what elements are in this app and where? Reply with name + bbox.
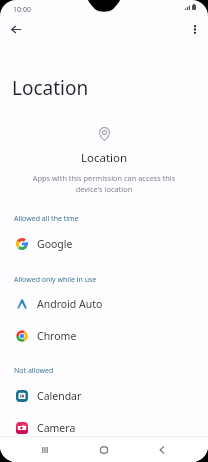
button[interactable]: Android Auto [0, 289, 208, 319]
staticText: Google [37, 237, 73, 251]
button[interactable]: Chrome [0, 321, 208, 351]
staticText: 10:00 [13, 5, 31, 15]
button[interactable]: Google [0, 229, 208, 259]
button[interactable]: Calendar [0, 381, 208, 411]
button[interactable]: Home [93, 439, 115, 461]
staticText: Apps with this permission can access thi… [28, 173, 180, 194]
staticText: Not allowed [14, 366, 54, 376]
button[interactable]: Camera [0, 413, 208, 443]
button[interactable]: Recents [34, 439, 56, 461]
staticText: Location [12, 75, 89, 101]
staticText: Calendar [37, 389, 82, 403]
staticText: Camera [37, 421, 76, 435]
button[interactable]: More options [181, 16, 208, 43]
staticText: Location [81, 150, 128, 166]
staticText: Android Auto [37, 297, 103, 311]
staticText: Allowed all the time [14, 214, 79, 224]
button[interactable]: Navigate up [2, 16, 29, 43]
staticText: Allowed only while in use [14, 275, 97, 285]
staticText: Chrome [37, 329, 77, 343]
button[interactable]: Back [151, 439, 173, 461]
